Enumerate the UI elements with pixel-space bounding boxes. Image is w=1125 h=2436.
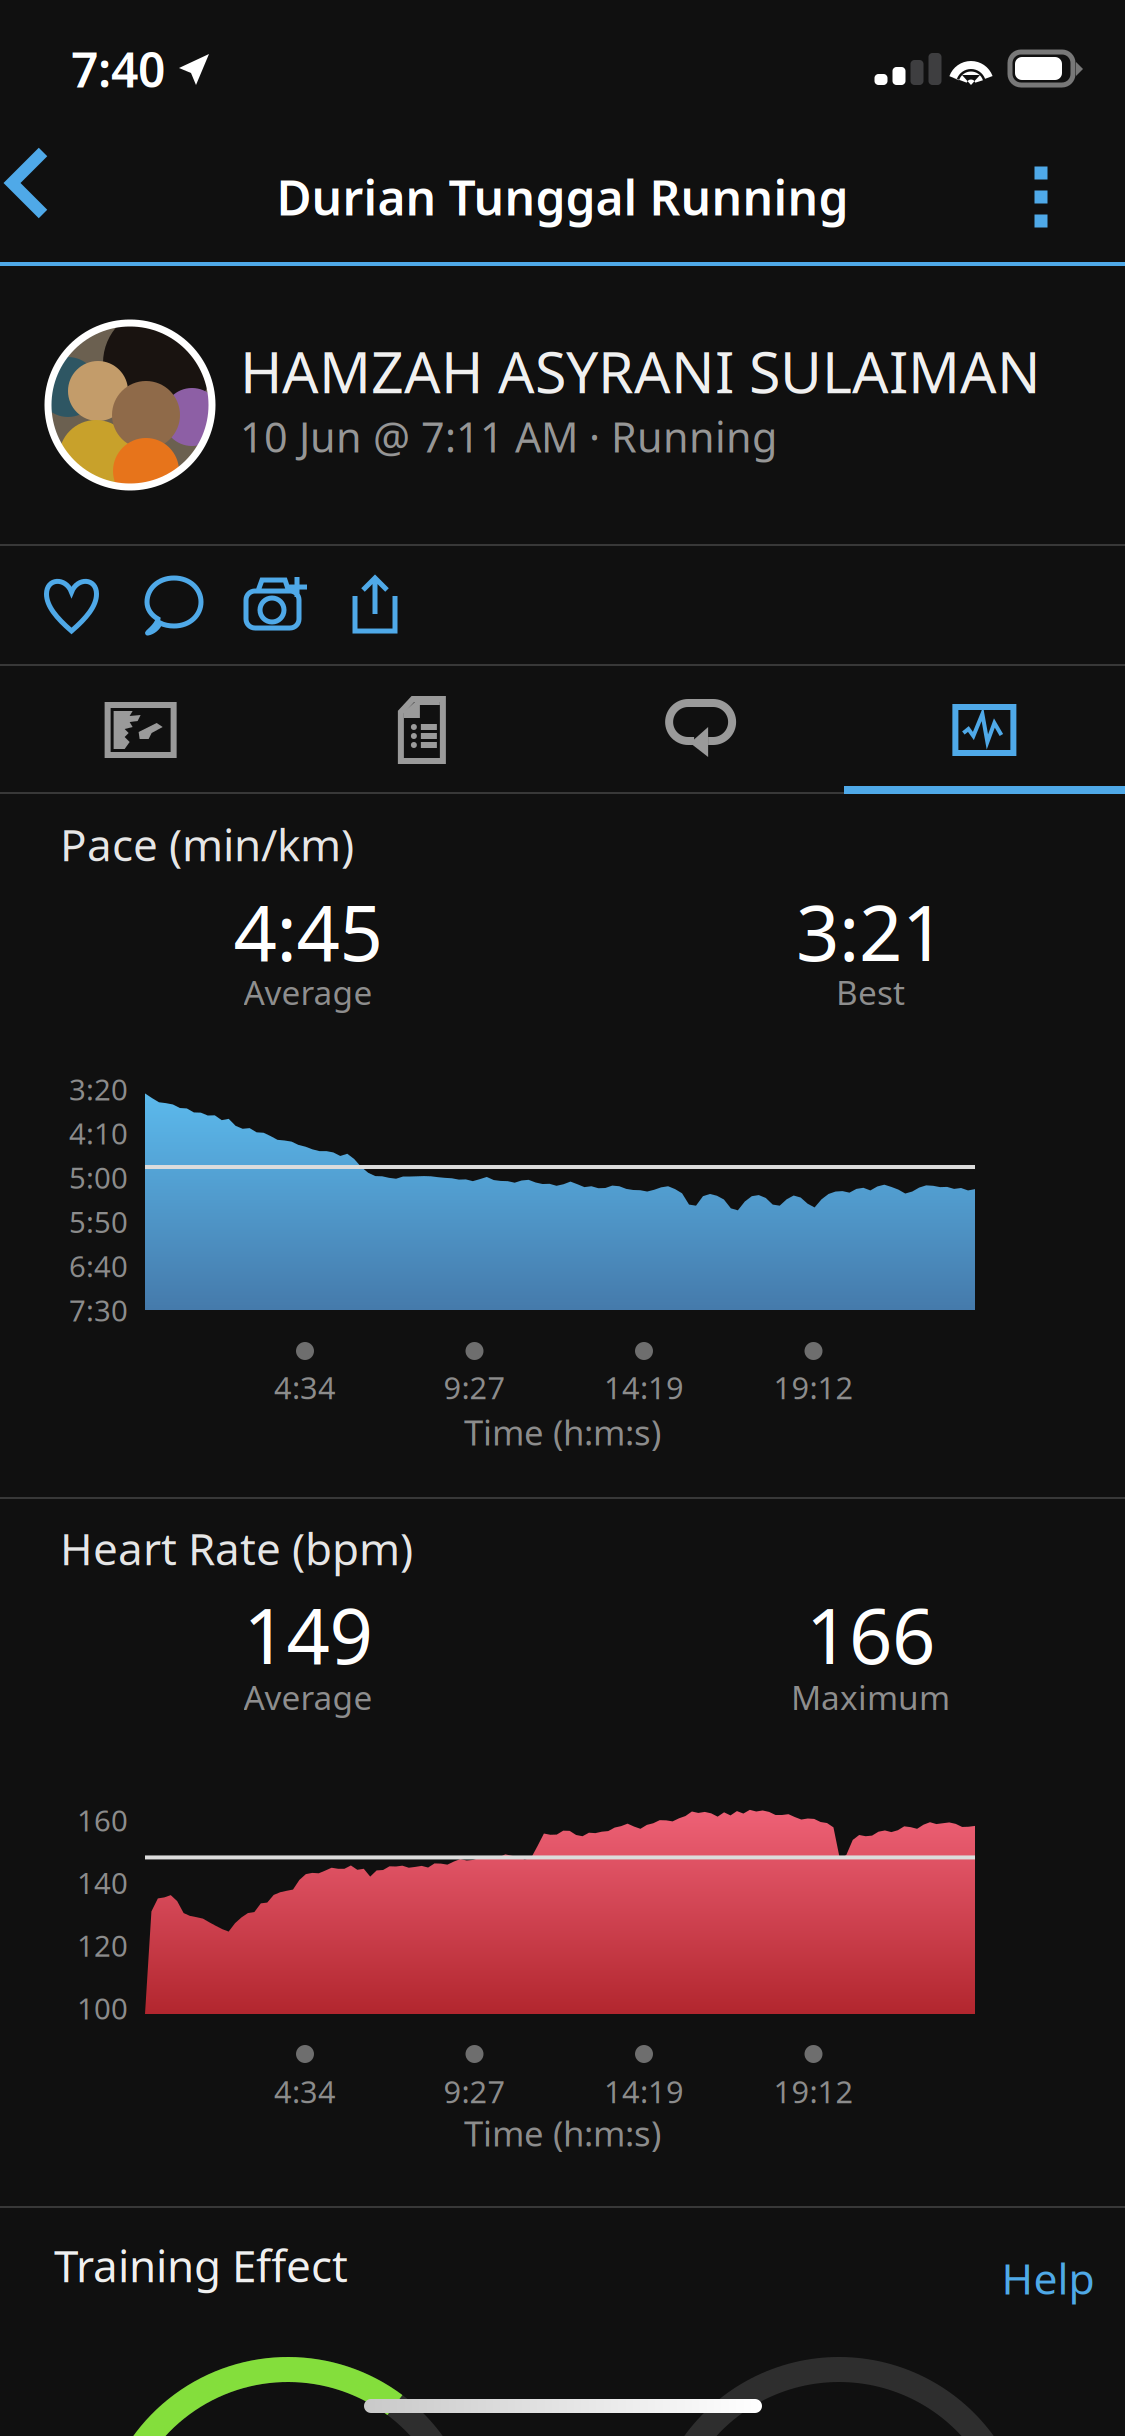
- staticText: 5:00: [69, 1158, 128, 1197]
- staticText: HAMZAH ASYRANI SULAIMAN: [240, 333, 1041, 409]
- staticText: Maximum: [791, 1675, 950, 1719]
- staticText: 100: [77, 1989, 128, 2028]
- staticText: 3:21: [796, 881, 945, 982]
- button[interactable]: More options: [986, 132, 1096, 262]
- button[interactable]: Share: [326, 546, 426, 664]
- staticText: 7:30: [69, 1290, 128, 1329]
- staticText: Heart Rate (bpm): [60, 1519, 413, 1577]
- staticText: Durian Tunggal Running: [276, 165, 848, 229]
- staticText: Average: [243, 1675, 372, 1719]
- staticText: 3:20: [69, 1069, 128, 1108]
- button[interactable]: Map: [0, 666, 281, 794]
- staticText: 166: [806, 1584, 935, 1685]
- button[interactable]: Help: [983, 2238, 1113, 2318]
- staticText: 120: [77, 1926, 128, 1965]
- staticText: 7:40: [71, 37, 165, 101]
- button[interactable]: Add photo: [226, 546, 326, 664]
- button[interactable]: Charts: [844, 666, 1125, 794]
- staticText: 6:40: [69, 1246, 128, 1285]
- staticText: 9:27: [443, 1367, 505, 1408]
- staticText: Pace (min/km): [60, 815, 354, 873]
- staticText: 19:12: [773, 1367, 853, 1408]
- staticText: Average: [243, 970, 372, 1014]
- staticText: Training Effect: [54, 2236, 348, 2294]
- button[interactable]: Comment: [122, 546, 226, 664]
- staticText: 14:19: [604, 1367, 684, 1408]
- button[interactable]: Back: [0, 132, 110, 262]
- staticText: 149: [243, 1584, 372, 1685]
- staticText: 4:45: [233, 881, 382, 982]
- staticText: 9:27: [443, 2071, 505, 2112]
- staticText: 4:34: [274, 2071, 336, 2112]
- staticText: 14:19: [604, 2071, 684, 2112]
- button[interactable]: Laps: [562, 666, 844, 794]
- staticText: Time (h:m:s): [464, 2110, 661, 2156]
- staticText: 4:34: [274, 1367, 336, 1408]
- staticText: 160: [77, 1800, 128, 1839]
- staticText: Time (h:m:s): [464, 1409, 661, 1455]
- staticText: 19:12: [773, 2071, 853, 2112]
- staticText: Best: [836, 970, 905, 1014]
- staticText: Help: [1001, 2250, 1094, 2306]
- button[interactable]: Details: [281, 666, 562, 794]
- staticText: 5:50: [69, 1202, 128, 1241]
- staticText: 10 Jun @ 7:11 AM · Running: [240, 409, 777, 464]
- button[interactable]: Like: [21, 546, 122, 664]
- staticText: 4:10: [69, 1114, 128, 1153]
- staticText: 140: [77, 1863, 128, 1902]
